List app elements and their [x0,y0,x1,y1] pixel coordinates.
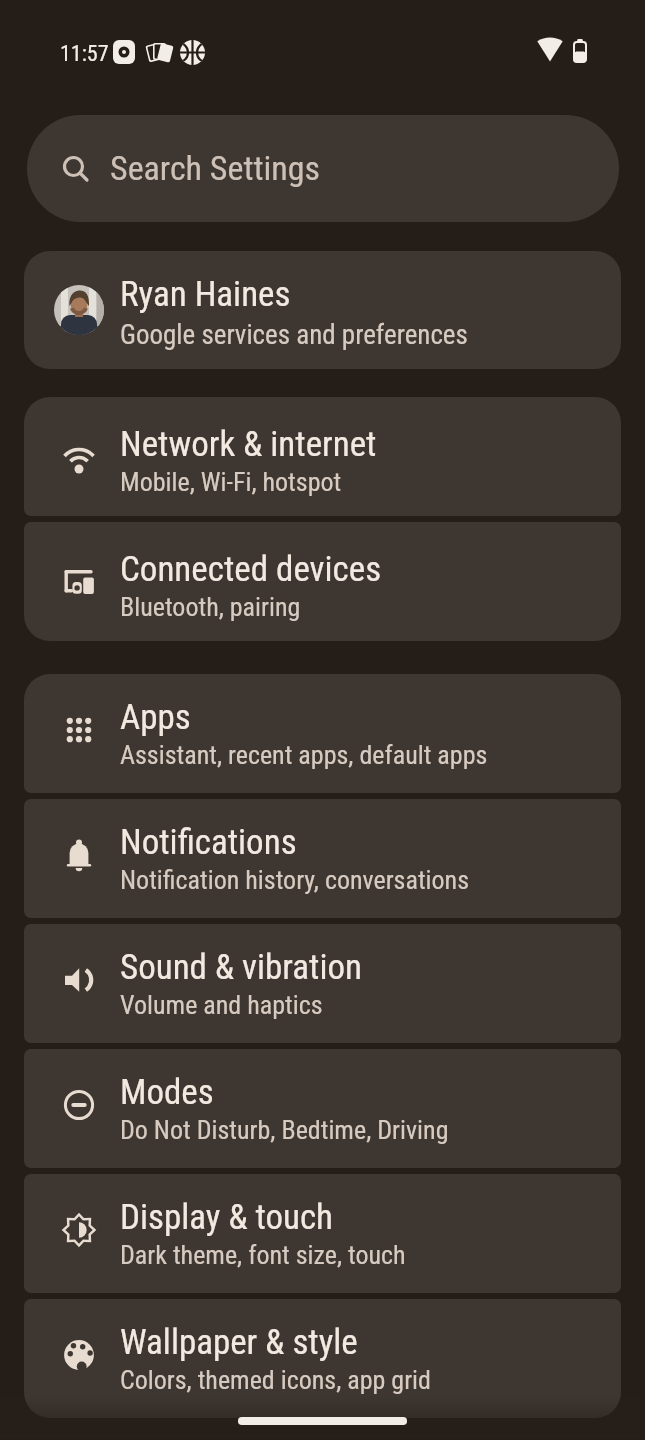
staticText: Apps [120,697,191,738]
staticText: 11:57 [60,41,109,67]
staticText: Search Settings [110,148,321,188]
staticText: Display & touch [120,1197,334,1238]
staticText: Wallpaper & style [120,1322,358,1363]
staticText: Modes [120,1072,214,1113]
staticText: Colors, themed icons, app grid [120,1365,431,1395]
staticText: Dark theme, font size, touch [120,1240,406,1270]
staticText: Bluetooth, pairing [120,592,301,622]
staticText: Notification history, conversations [120,865,470,895]
staticText: Volume and haptics [120,990,323,1020]
staticText: Network & internet [120,424,377,465]
staticText: Do Not Disturb, Bedtime, Driving [120,1115,449,1145]
staticText: Google services and preferences [120,319,468,351]
staticText: Mobile, Wi-Fi, hotspot [120,467,342,497]
staticText: Notifications [120,822,297,863]
staticText: Ryan Haines [120,274,291,315]
staticText: Connected devices [120,549,382,590]
staticText: Assistant, recent apps, default apps [120,740,488,770]
staticText: Sound & vibration [120,947,362,988]
